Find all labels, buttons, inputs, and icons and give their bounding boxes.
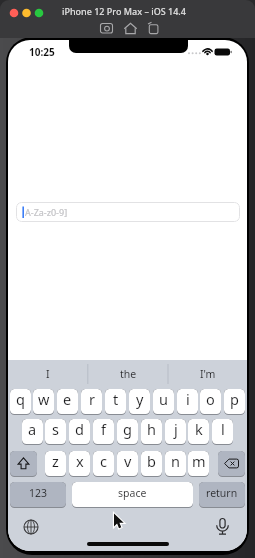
button[interactable]: e xyxy=(57,389,78,415)
button[interactable]: l xyxy=(212,419,233,445)
staticText: v xyxy=(124,451,132,471)
staticText: m xyxy=(192,451,206,471)
staticText: s xyxy=(52,419,59,439)
button[interactable] xyxy=(218,451,245,477)
staticText: I'm xyxy=(200,367,216,381)
button[interactable]: p xyxy=(224,389,245,415)
button[interactable]: r xyxy=(81,389,102,415)
staticText: I xyxy=(46,367,50,381)
staticText: d xyxy=(75,419,84,439)
button[interactable] xyxy=(22,518,40,536)
staticText: u xyxy=(159,389,168,409)
staticText: i xyxy=(186,389,190,409)
staticText: x xyxy=(76,451,84,471)
staticText: r xyxy=(89,389,95,409)
staticText: l xyxy=(221,419,225,439)
button[interactable]: v xyxy=(117,451,138,477)
button[interactable]: q xyxy=(10,389,31,415)
button[interactable]: s xyxy=(45,419,66,445)
staticText: y xyxy=(136,389,144,409)
staticText: t xyxy=(113,389,119,409)
button[interactable]: b xyxy=(141,451,162,477)
button[interactable]: i xyxy=(177,389,198,415)
button[interactable]: f xyxy=(93,419,114,445)
staticText: a xyxy=(28,419,37,439)
button[interactable]: return xyxy=(199,482,245,508)
staticText: e xyxy=(63,389,72,409)
button[interactable]: m xyxy=(188,451,209,477)
button[interactable]: d xyxy=(69,419,90,445)
button[interactable]: y xyxy=(129,389,150,415)
button[interactable]: 123 xyxy=(10,482,66,508)
button[interactable]: z xyxy=(45,451,66,477)
staticText: q xyxy=(16,389,25,409)
staticText: b xyxy=(147,451,156,471)
button[interactable]: space xyxy=(72,482,193,508)
button[interactable]: n xyxy=(165,451,186,477)
button[interactable]: I xyxy=(13,366,83,381)
button[interactable]: I'm xyxy=(173,366,243,381)
staticText: j xyxy=(174,419,178,439)
staticText: iPhone 12 Pro Max – iOS 14.4 xyxy=(62,5,186,17)
staticText: w xyxy=(38,389,50,409)
button[interactable] xyxy=(10,451,37,477)
staticText: h xyxy=(147,419,156,439)
staticText: the xyxy=(120,367,137,381)
button[interactable]: A-Za-z0-9] xyxy=(16,202,240,222)
button[interactable]: a xyxy=(22,419,43,445)
staticText: 10:25 xyxy=(29,45,55,59)
staticText: A-Za-z0-9] xyxy=(25,206,68,218)
button[interactable]: j xyxy=(165,419,186,445)
staticText: g xyxy=(123,419,132,439)
button[interactable]: k xyxy=(188,419,209,445)
button[interactable]: u xyxy=(153,389,174,415)
button[interactable] xyxy=(214,517,231,537)
button[interactable]: h xyxy=(141,419,162,445)
staticText: return xyxy=(206,486,238,500)
button[interactable]: c xyxy=(93,451,114,477)
button[interactable]: t xyxy=(105,389,126,415)
staticText: c xyxy=(100,451,107,471)
staticText: f xyxy=(101,419,106,439)
staticText: p xyxy=(230,389,239,409)
staticText: space xyxy=(118,486,147,500)
staticText: n xyxy=(171,451,180,471)
button[interactable]: o xyxy=(200,389,221,415)
button[interactable]: w xyxy=(33,389,54,415)
button[interactable]: the xyxy=(93,366,163,381)
button[interactable]: x xyxy=(69,451,90,477)
staticText: o xyxy=(206,389,215,409)
staticText: z xyxy=(52,451,59,471)
button[interactable]: g xyxy=(117,419,138,445)
staticText: k xyxy=(195,419,203,439)
staticText: 123 xyxy=(29,486,48,500)
